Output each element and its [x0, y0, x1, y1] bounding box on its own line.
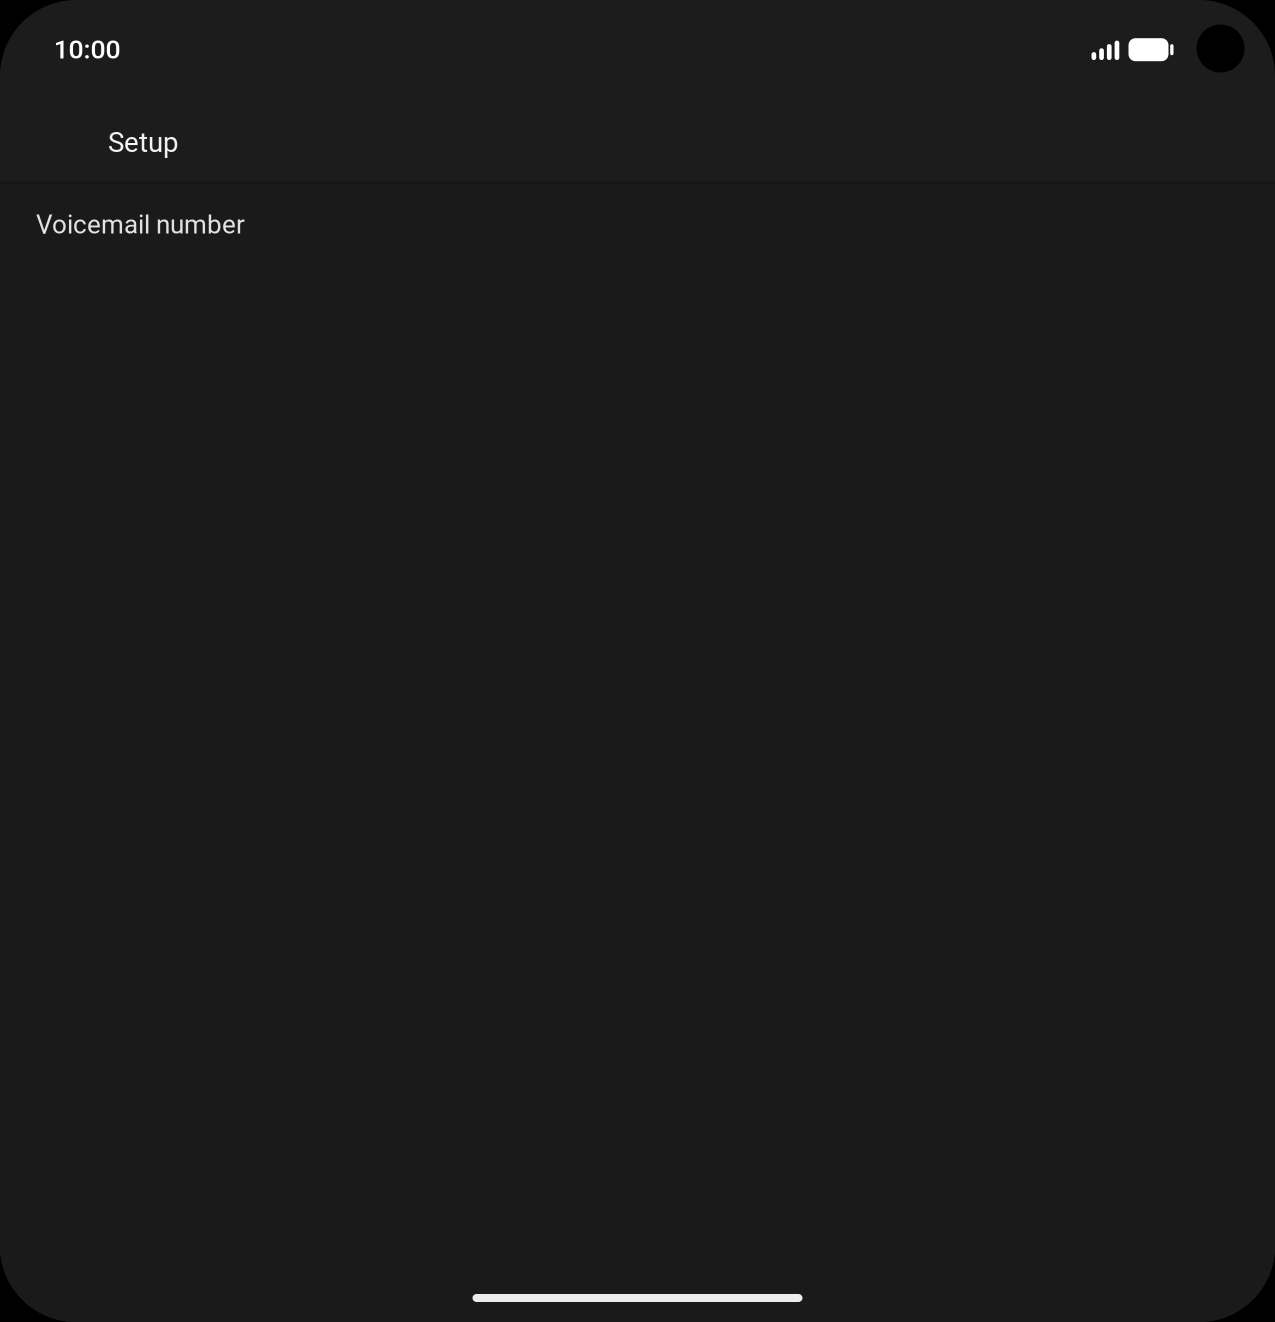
staticText: Setup	[108, 126, 178, 159]
staticText: Voicemail number	[36, 209, 245, 240]
button[interactable]: Voicemail number	[0, 184, 1275, 268]
staticText: 10:00	[53, 34, 120, 65]
